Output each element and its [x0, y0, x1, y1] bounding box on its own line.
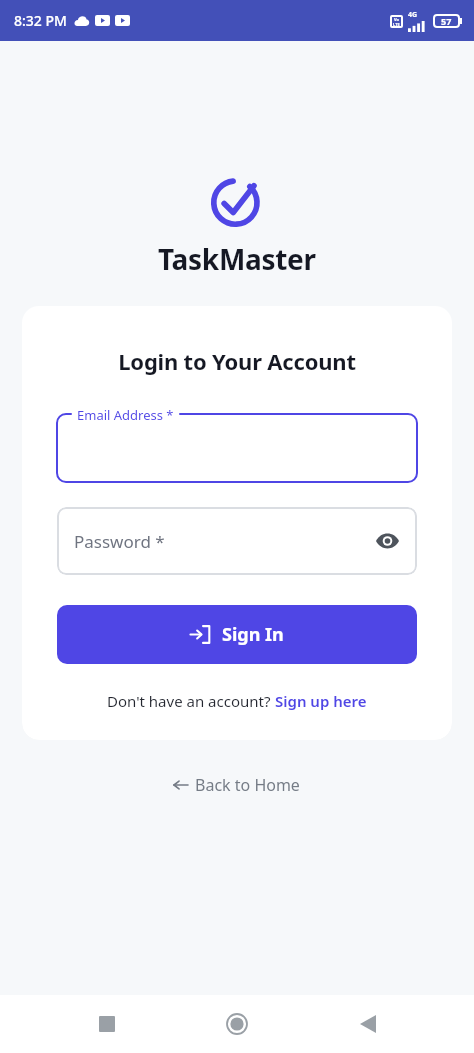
button[interactable]: Sign up here [275, 691, 367, 711]
button[interactable]: Password * [57, 507, 417, 575]
staticText: Email Address * [77, 406, 174, 424]
staticText: LTE [393, 22, 400, 27]
button[interactable]: Email Address * [57, 414, 417, 482]
button[interactable]: Show password [370, 524, 404, 558]
staticText: Vo [394, 17, 400, 22]
button[interactable]: Back to Home [164, 768, 310, 802]
button[interactable]: Back [344, 1000, 392, 1048]
staticText: TaskMaster [158, 240, 316, 278]
staticText: Login to Your Account [57, 346, 417, 376]
staticText: 8:32 PM [14, 11, 67, 30]
button[interactable]: Recent apps [83, 1000, 131, 1048]
staticText: 4G [408, 10, 418, 20]
button[interactable]: Home [213, 1000, 261, 1048]
staticText: Password * [74, 530, 165, 553]
staticText: 57 [441, 15, 452, 27]
staticText: Sign up here [275, 691, 367, 711]
staticText: Don't have an account? [107, 691, 275, 711]
staticText: Sign In [222, 622, 284, 647]
button[interactable]: Sign In [57, 605, 417, 664]
staticText: Back to Home [195, 774, 300, 796]
